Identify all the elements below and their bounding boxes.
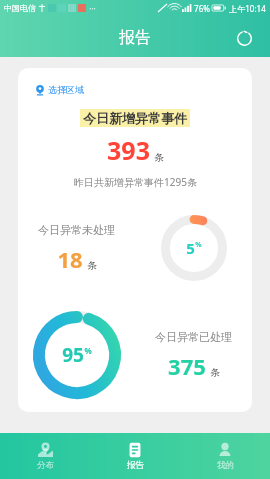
staticText: 5 [186, 238, 195, 258]
staticText: 条 [210, 366, 220, 379]
staticText: 上午10:14 [229, 3, 266, 14]
button[interactable]: 分布 [0, 433, 90, 479]
staticText: 今日异常已处理 [155, 330, 232, 344]
staticText: 393 [107, 133, 150, 167]
button[interactable]: Refresh [228, 22, 260, 54]
button[interactable]: 95 [33, 311, 121, 399]
staticText: % [195, 240, 202, 250]
staticText: 76% [194, 3, 210, 14]
button[interactable]: 报告 [90, 433, 180, 479]
staticText: 中国电信 [4, 3, 36, 13]
staticText: 报告 [127, 460, 144, 471]
button[interactable]: 5 [161, 215, 227, 281]
staticText: ··· [89, 3, 96, 14]
staticText: 375 [168, 351, 206, 381]
staticText: 我的 [217, 460, 234, 471]
button[interactable]: 选择区域 [29, 79, 91, 100]
staticText: % [84, 345, 92, 356]
staticText: 报告 [119, 28, 151, 48]
staticText: 今日异常未处理 [38, 223, 115, 237]
staticText: 今日新增异常事件 [83, 110, 187, 126]
staticText: 选择区域 [48, 84, 84, 95]
staticText: 条 [154, 151, 164, 164]
staticText: 18 [57, 244, 83, 274]
staticText: 条 [87, 259, 97, 272]
staticText: 昨日共新增异常事件1295条 [74, 175, 197, 189]
button[interactable]: 我的 [180, 433, 270, 479]
staticText: 95 [62, 342, 84, 368]
staticText: 分布 [37, 460, 54, 471]
